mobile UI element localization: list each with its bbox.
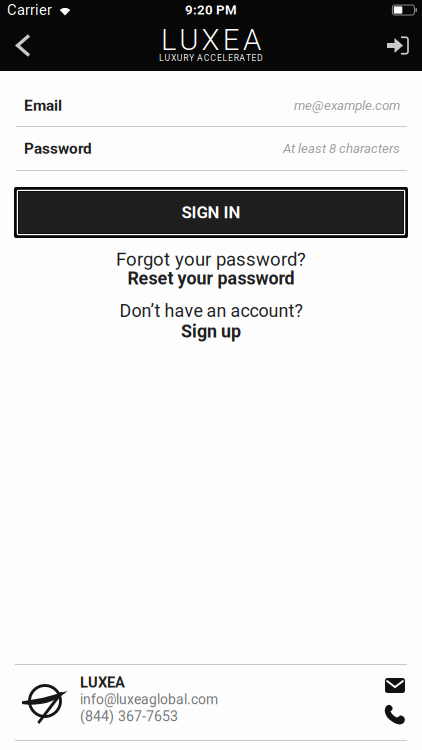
button[interactable]: Call LUXEA: [384, 703, 406, 725]
staticText: R: [234, 53, 239, 63]
button[interactable]: Password: [0, 127, 422, 171]
staticText: C: [204, 53, 210, 63]
button[interactable]: Sign up: [181, 321, 241, 342]
staticText: U: [164, 53, 170, 63]
staticText: E: [223, 23, 240, 57]
button[interactable]: Back: [0, 21, 29, 69]
staticText: E: [228, 53, 233, 63]
staticText: A: [239, 53, 245, 63]
staticText: At least 8 characters: [283, 141, 400, 156]
staticText: info@luxeaglobal.com: [80, 691, 218, 708]
staticText: T: [246, 53, 251, 63]
staticText: 9:20 PM: [185, 2, 237, 18]
staticText: Sign up: [181, 321, 241, 342]
staticText: Email: [24, 96, 62, 114]
button[interactable]: Reset your password: [127, 269, 294, 288]
staticText: Don’t have an account?: [119, 300, 302, 321]
button[interactable]: Sign in: [390, 21, 422, 70]
staticText: Carrier: [7, 1, 52, 19]
button[interactable]: SIGN IN: [0, 171, 422, 238]
staticText: Reset your password: [127, 268, 294, 289]
staticText: E: [217, 53, 222, 63]
staticText: LUXEA: [80, 674, 125, 691]
staticText: SIGN IN: [181, 203, 240, 222]
staticText: Forgot your password?: [116, 249, 306, 270]
staticText: L: [159, 53, 164, 63]
staticText: R: [183, 53, 188, 63]
button[interactable]: Email: [0, 71, 422, 127]
staticText: Password: [24, 139, 92, 157]
staticText: X: [201, 23, 219, 57]
staticText: U: [179, 23, 198, 57]
staticText: L: [161, 23, 176, 57]
staticText: (844) 367-7653: [80, 708, 178, 725]
staticText: me@example.com: [294, 98, 400, 113]
staticText: A: [197, 53, 203, 63]
staticText: [194, 53, 196, 63]
staticText: X: [171, 53, 176, 63]
staticText: L: [222, 53, 227, 63]
staticText: Y: [189, 53, 194, 63]
staticText: E: [251, 53, 256, 63]
staticText: D: [257, 53, 263, 63]
button[interactable]: Email LUXEA: [385, 678, 405, 693]
staticText: C: [210, 53, 216, 63]
staticText: A: [243, 23, 261, 57]
staticText: U: [177, 53, 183, 63]
